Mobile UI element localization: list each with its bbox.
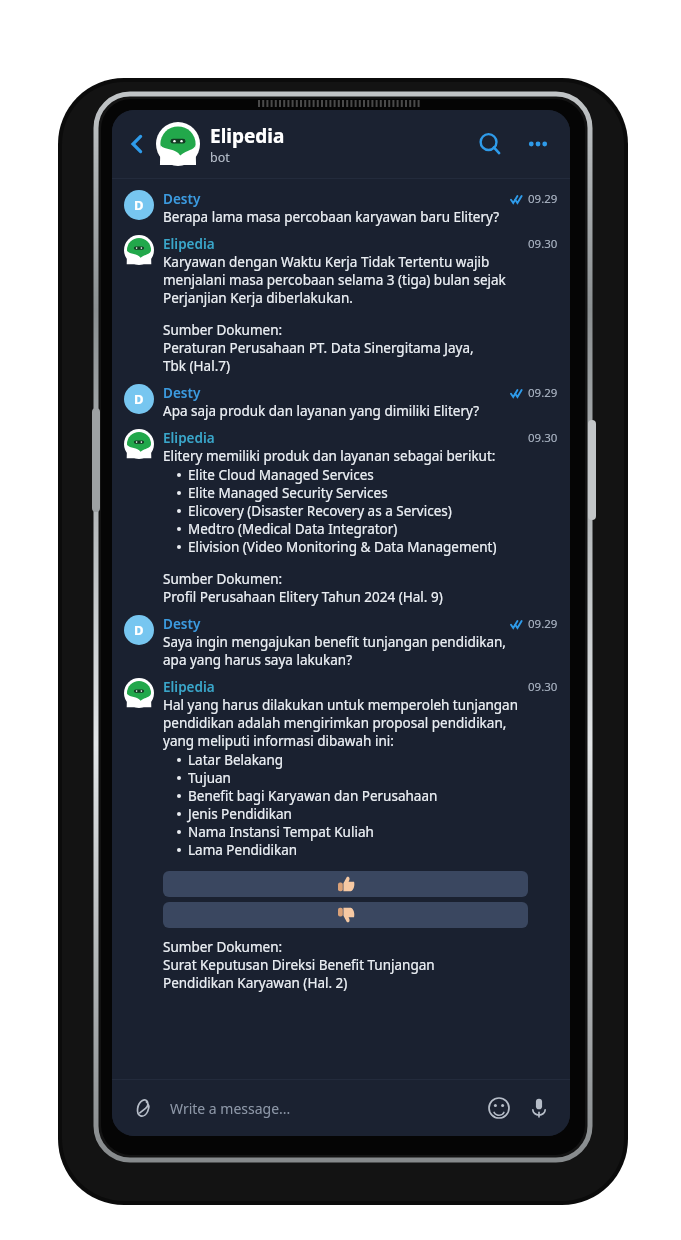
button[interactable]: More options: [520, 126, 556, 162]
button[interactable]: D: [112, 379, 570, 424]
staticText: 09.30: [528, 430, 558, 446]
button[interactable]: Elipedia: [112, 424, 570, 610]
staticText: Elivision (Video Monitoring & Data Manag…: [188, 538, 497, 556]
staticText: Elipedia: [163, 429, 215, 447]
staticText: Peraturan Perusahaan PT. Data Sinergitam…: [163, 339, 474, 375]
staticText: Hal yang harus dilakukan untuk memperole…: [163, 696, 528, 750]
staticText: Elite Cloud Managed Services: [188, 466, 374, 484]
staticText: Desty: [163, 190, 201, 208]
button[interactable]: D: [112, 610, 570, 673]
button[interactable]: D: [112, 185, 570, 230]
button[interactable]: Thumbs up: [163, 871, 528, 897]
staticText: Sumber Dokumen:: [163, 321, 283, 339]
button[interactable]: Emoji: [482, 1091, 516, 1125]
staticText: Jenis Pendidikan: [188, 805, 292, 823]
button[interactable]: Back: [120, 127, 154, 161]
staticText: Karyawan dengan Waktu Kerja Tidak Terten…: [163, 253, 528, 307]
button[interactable]: Elipedia: [112, 230, 570, 379]
button[interactable]: Search: [470, 124, 510, 164]
staticText: Sumber Dokumen:: [163, 938, 283, 956]
staticText: Elite Managed Security Services: [188, 484, 388, 502]
staticText: Write a message...: [170, 1099, 482, 1118]
staticText: 09.29: [528, 191, 558, 207]
staticText: Profil Perusahaan Elitery Tahun 2024 (Ha…: [163, 588, 443, 606]
staticText: D: [134, 196, 144, 214]
staticText: Nama Instansi Tempat Kuliah: [188, 823, 374, 841]
staticText: Berapa lama masa percobaan karyawan baru…: [163, 208, 500, 226]
staticText: Medtro (Medical Data Integrator): [188, 520, 398, 538]
staticText: D: [134, 621, 144, 639]
staticText: Tujuan: [188, 769, 231, 787]
staticText: Surat Keputusan Direksi Benefit Tunjanga…: [163, 956, 435, 992]
staticText: bot: [210, 149, 230, 166]
staticText: Elipedia: [163, 678, 215, 696]
staticText: 09.29: [528, 385, 558, 401]
staticText: Latar Belakang: [188, 751, 284, 769]
staticText: Elicovery (Disaster Recovery as a Servic…: [188, 502, 452, 520]
staticText: Elipedia: [210, 123, 285, 149]
staticText: Elitery memiliki produk dan layanan seba…: [163, 447, 496, 465]
staticText: 09.30: [528, 679, 558, 695]
button[interactable]: Voice message: [522, 1091, 556, 1125]
button[interactable]: Thumbs down: [163, 902, 528, 928]
button[interactable]: Elipedia: [112, 673, 570, 996]
staticText: Saya ingin mengajukan benefit tunjangan …: [163, 633, 506, 669]
staticText: D: [134, 390, 144, 408]
staticText: Apa saja produk dan layanan yang dimilik…: [163, 402, 479, 420]
staticText: Desty: [163, 615, 201, 633]
staticText: Sumber Dokumen:: [163, 570, 283, 588]
staticText: 09.30: [528, 236, 558, 252]
staticText: Benefit bagi Karyawan dan Perusahaan: [188, 787, 438, 805]
staticText: 09.29: [528, 616, 558, 632]
staticText: Lama Pendidikan: [188, 841, 298, 859]
staticText: Elipedia: [163, 235, 215, 253]
staticText: Desty: [163, 384, 201, 402]
button[interactable]: Attach file: [126, 1092, 158, 1124]
